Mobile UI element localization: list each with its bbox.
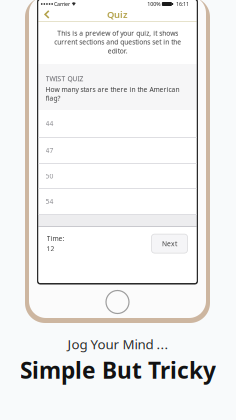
staticText: Jog Your Mind ... bbox=[67, 335, 168, 353]
staticText: 44 bbox=[45, 119, 53, 128]
staticText: 100% bbox=[147, 0, 160, 8]
staticText: 54 bbox=[45, 197, 53, 206]
button[interactable]: Next bbox=[151, 234, 187, 253]
staticText: This is a preview of your quiz, it shows… bbox=[54, 29, 181, 55]
staticText: 47 bbox=[45, 146, 53, 155]
button[interactable]: Back bbox=[40, 8, 53, 21]
staticText: Simple But Tricky bbox=[20, 355, 216, 385]
staticText: 12 bbox=[46, 244, 54, 253]
staticText: TWIST QUIZ bbox=[45, 74, 83, 83]
staticText: Time: bbox=[46, 234, 64, 243]
staticText: 16:11 bbox=[176, 0, 189, 8]
staticText: 50 bbox=[45, 172, 53, 180]
staticText: Carrier bbox=[53, 0, 70, 8]
button[interactable]: 47 bbox=[38, 138, 196, 164]
button[interactable]: 54 bbox=[38, 189, 196, 215]
staticText: Quiz bbox=[107, 8, 128, 21]
button[interactable]: 44 bbox=[38, 110, 196, 138]
button[interactable]: 50 bbox=[38, 164, 196, 189]
staticText: How many stars are there in the American… bbox=[45, 85, 179, 103]
staticText: Next bbox=[162, 239, 177, 248]
